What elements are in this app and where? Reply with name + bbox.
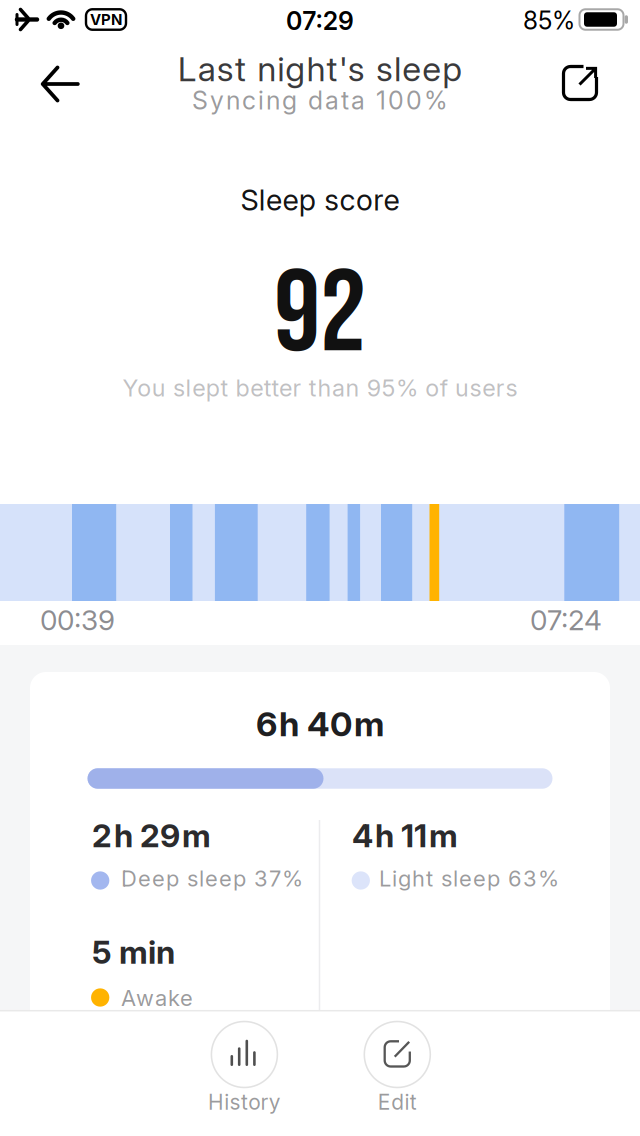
staticText: History <box>208 1089 281 1115</box>
staticText: Light sleep 63% <box>379 865 559 892</box>
staticText: Edit <box>378 1089 417 1115</box>
staticText: Awake <box>121 985 193 1011</box>
staticText: 6 h 40 m <box>256 703 384 744</box>
staticText: Last night's sleep <box>178 48 462 89</box>
staticText: 5 min <box>92 933 175 971</box>
staticText: 07:29 <box>286 6 354 36</box>
staticText: Sleep score <box>240 182 399 218</box>
staticText: You slept better than 95% of users <box>123 374 517 402</box>
button[interactable]: History <box>184 1018 304 1110</box>
staticText: 4 h 11 m <box>352 816 458 855</box>
button[interactable]: Edit <box>337 1018 457 1110</box>
staticText: Deep sleep 37% <box>121 865 303 892</box>
staticText: Syncing data 100% <box>192 85 448 116</box>
staticText: VPN <box>90 10 122 28</box>
button[interactable]: Share <box>548 51 612 115</box>
staticText: 00:39 <box>40 603 115 637</box>
staticText: 92 <box>274 246 366 385</box>
staticText: 2 h 29 m <box>92 816 211 855</box>
staticText: 07:24 <box>530 603 602 637</box>
staticText: 85% <box>523 6 575 35</box>
button[interactable]: Back <box>28 52 92 116</box>
